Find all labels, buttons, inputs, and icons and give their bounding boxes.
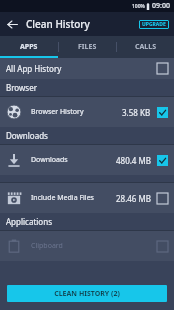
button[interactable]: Toggle selection	[157, 107, 168, 118]
button[interactable]: Toggle selection	[157, 193, 168, 204]
staticText: Downloads	[6, 130, 48, 141]
staticText: CLEAN HISTORY (2)	[54, 289, 120, 299]
button[interactable]: Back	[0, 12, 24, 36]
button[interactable]: Clipboard	[0, 231, 174, 261]
staticText: Include Media Files	[31, 193, 94, 203]
button[interactable]: Toggle selection	[157, 63, 168, 74]
staticText: Clean History	[26, 17, 90, 31]
staticText: 480.4 MB	[116, 155, 151, 166]
button[interactable]: UPGRADE	[139, 20, 169, 29]
staticText: FILES	[78, 42, 97, 52]
button[interactable]: Downloads	[0, 145, 174, 175]
button[interactable]: Browser History	[0, 97, 174, 127]
staticText: UPGRADE	[142, 21, 166, 28]
staticText: Downloads	[31, 155, 68, 165]
staticText: 3.58 KB	[122, 107, 151, 118]
button[interactable]: APPS	[0, 36, 58, 58]
button[interactable]: Toggle selection	[157, 155, 168, 166]
staticText: All App History	[6, 63, 62, 74]
button[interactable]: Toggle selection	[157, 241, 168, 252]
button[interactable]: CLEAN HISTORY (2)	[7, 285, 167, 302]
staticText: CALLS	[135, 42, 157, 52]
staticText: Applications	[6, 216, 52, 227]
staticText: Browser History	[31, 107, 84, 117]
staticText: Browser	[6, 82, 37, 93]
button[interactable]: FILES	[59, 36, 116, 58]
button[interactable]: All App History	[0, 58, 174, 79]
staticText: 09:00	[152, 1, 170, 11]
button[interactable]: Include Media Files	[0, 183, 174, 213]
staticText: 100%	[132, 3, 145, 10]
staticText: APPS	[20, 42, 38, 52]
staticText: Clipboard	[31, 241, 63, 251]
button[interactable]: CALLS	[117, 36, 174, 58]
staticText: 28.46 MB	[116, 193, 151, 204]
